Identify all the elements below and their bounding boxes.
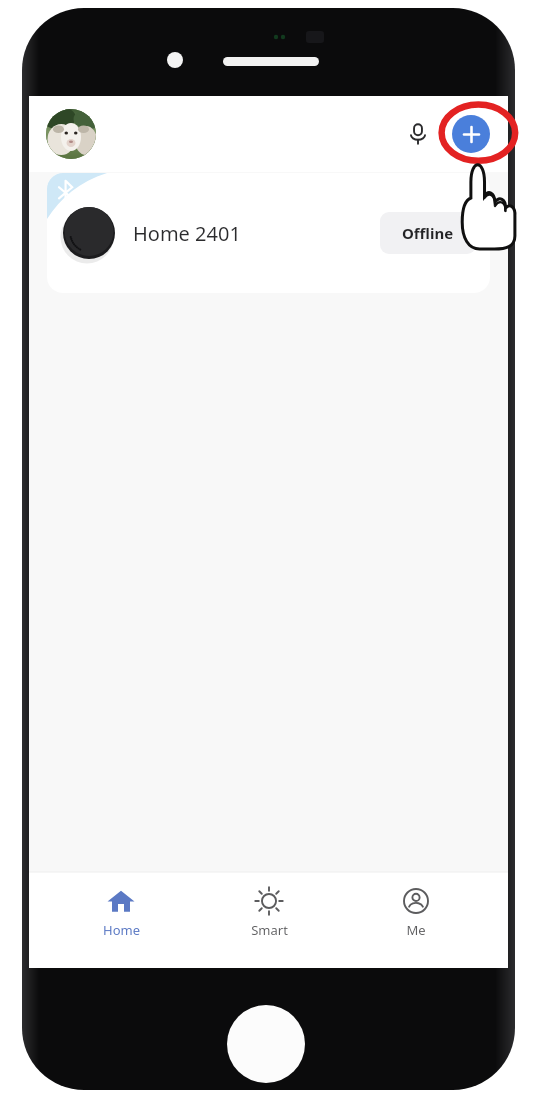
staticText: Offline: [402, 223, 454, 243]
button[interactable]: Profile: [46, 109, 96, 159]
staticText: Smart: [251, 921, 288, 939]
button[interactable]: Add device: [452, 115, 490, 153]
staticText: Home 2401: [133, 220, 241, 247]
staticText: Me: [406, 921, 426, 939]
button[interactable]: Smart: [214, 882, 324, 943]
button[interactable]: Offline: [380, 212, 476, 254]
staticText: Home: [103, 921, 140, 939]
button[interactable]: Home: [66, 882, 176, 943]
button[interactable]: Home 2401: [47, 173, 490, 293]
button[interactable]: Voice assistant: [398, 114, 438, 154]
button[interactable]: Me: [361, 882, 471, 943]
